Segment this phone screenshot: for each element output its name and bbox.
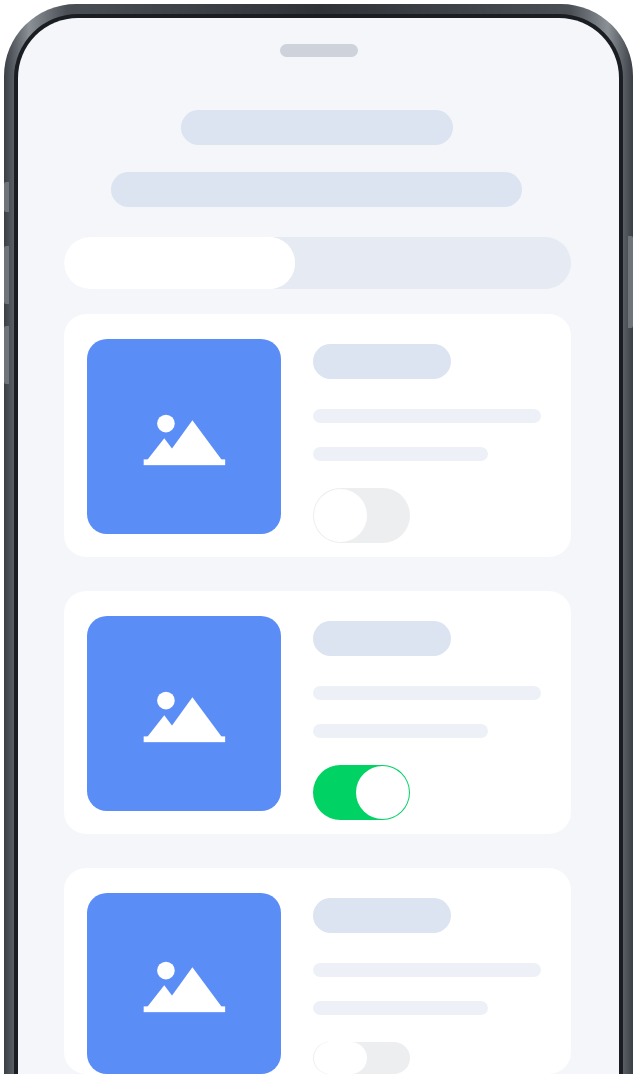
button[interactable]: Image	[64, 314, 571, 557]
button[interactable]: Image	[87, 893, 281, 1074]
button[interactable]: Toggle off	[313, 488, 410, 543]
button[interactable]: Toggle on	[313, 765, 410, 820]
button[interactable]: Image	[87, 616, 281, 811]
button[interactable]: Toggle off	[313, 1042, 410, 1074]
button[interactable]: Image	[87, 339, 281, 534]
button[interactable]: Image	[64, 591, 571, 834]
button[interactable]: Image	[64, 868, 571, 1074]
button[interactable]: Slider	[64, 237, 571, 289]
